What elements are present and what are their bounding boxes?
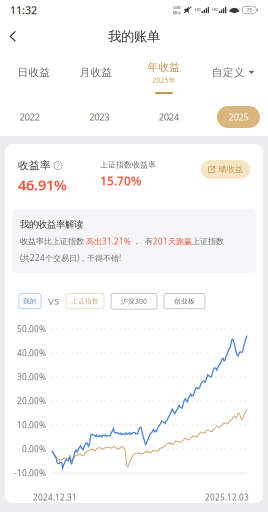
staticText: 2025 bbox=[228, 111, 248, 123]
staticText: 2025年 bbox=[152, 76, 175, 84]
staticText: 上证指数收益率 bbox=[100, 160, 156, 170]
button[interactable]: 晒收益 bbox=[201, 160, 250, 179]
button[interactable]: 年收益 bbox=[127, 53, 201, 98]
staticText: 收益率比上证指数 bbox=[20, 236, 86, 246]
staticText: 沪深300 bbox=[121, 297, 147, 306]
button[interactable]: 2022 bbox=[8, 106, 51, 128]
staticText: 自定义 bbox=[212, 66, 245, 79]
staticText: 年收益 bbox=[147, 60, 180, 74]
button[interactable]: 2024 bbox=[147, 106, 190, 128]
staticText: 46.91% bbox=[18, 175, 67, 195]
staticText: 上证指数 bbox=[71, 297, 99, 305]
staticText: 月收益 bbox=[79, 66, 112, 79]
staticText: ， 有 bbox=[131, 236, 153, 246]
staticText: 20.00% bbox=[17, 396, 46, 406]
button[interactable]: 沪深300 bbox=[111, 293, 157, 309]
staticText: 10.00% bbox=[17, 420, 46, 430]
staticText: HD bbox=[212, 7, 218, 12]
button[interactable]: 2025 bbox=[217, 106, 260, 128]
staticText: 2023 bbox=[89, 111, 109, 123]
staticText: 11:32 bbox=[10, 3, 37, 17]
staticText: 0.00% bbox=[22, 444, 46, 454]
button[interactable]: 创业板 bbox=[164, 294, 205, 309]
staticText: 收益率 bbox=[18, 159, 51, 172]
staticText: 15.70% bbox=[100, 173, 142, 189]
staticText: 日收益 bbox=[17, 66, 50, 79]
button[interactable]: 上证指数 bbox=[66, 294, 104, 309]
button[interactable]: 我的 bbox=[19, 294, 41, 309]
staticText: VS bbox=[48, 295, 59, 307]
button[interactable]: 日收益 bbox=[3, 53, 65, 98]
staticText: 50.00% bbox=[17, 324, 46, 334]
button[interactable]: 自定义 bbox=[201, 53, 265, 98]
staticText: (共224个交易日)，干得不错! bbox=[20, 253, 121, 263]
staticText: 2025.12.03 bbox=[205, 492, 249, 503]
staticText: 75 bbox=[246, 6, 252, 14]
staticText: 上证指数 bbox=[192, 236, 224, 246]
staticText: HD bbox=[195, 7, 201, 12]
staticText: 晒收益 bbox=[219, 164, 243, 174]
staticText: KB/s bbox=[173, 10, 181, 15]
button[interactable]: 2023 bbox=[78, 106, 121, 128]
staticText: 高出31.21% bbox=[86, 236, 131, 247]
staticText: 30.00% bbox=[17, 372, 46, 382]
staticText: 创业板 bbox=[174, 297, 195, 305]
staticText: 2024 bbox=[159, 111, 179, 123]
staticText: ? bbox=[56, 161, 59, 170]
staticText: 我的 bbox=[23, 297, 37, 305]
staticText: 2024.12.31 bbox=[33, 492, 77, 503]
staticText: 2022 bbox=[19, 111, 39, 123]
button[interactable]: Back bbox=[0, 24, 26, 48]
staticText: 40.00% bbox=[17, 348, 46, 358]
staticText: 0.80 bbox=[173, 5, 180, 10]
staticText: 201天跑赢 bbox=[153, 236, 192, 247]
staticText: -10.00% bbox=[14, 468, 46, 478]
button[interactable]: 月收益 bbox=[65, 53, 127, 98]
staticText: 我的账单 bbox=[108, 28, 160, 45]
staticText: 我的收益率解读 bbox=[20, 219, 83, 230]
